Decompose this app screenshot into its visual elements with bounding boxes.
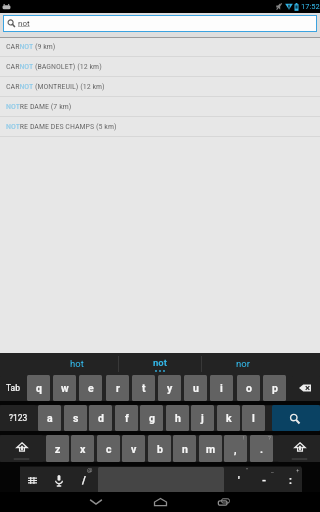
button[interactable]: not <box>119 353 201 375</box>
staticText: + <box>296 467 300 473</box>
button[interactable]: nor <box>202 353 284 375</box>
button[interactable]: d <box>89 405 112 431</box>
staticText: not <box>153 357 167 368</box>
button[interactable]: CARNOT (9 km) <box>0 37 320 57</box>
button[interactable]: z <box>46 435 69 462</box>
staticText: / <box>82 474 86 486</box>
button[interactable]: NOTRE DAME DES CHAMPS (5 km) <box>0 117 320 137</box>
staticText: f <box>125 412 129 424</box>
staticText: d <box>98 412 104 424</box>
button[interactable]: o <box>237 375 260 401</box>
button[interactable]: r <box>106 375 129 401</box>
staticText: : <box>289 474 292 486</box>
staticText: ' <box>238 474 240 486</box>
button[interactable]: w <box>53 375 76 401</box>
button[interactable]: t <box>132 375 155 401</box>
staticText: a <box>47 412 53 424</box>
staticText: g <box>149 412 155 424</box>
button[interactable]: k <box>217 405 240 431</box>
staticText: CARNOT (MONTREUIL) (12 km) <box>6 82 105 91</box>
staticText: t <box>142 382 146 394</box>
staticText: e <box>88 382 94 394</box>
staticText: s <box>73 412 79 424</box>
button[interactable] <box>47 467 71 493</box>
button[interactable]: h <box>166 405 189 431</box>
staticText: m <box>206 443 216 455</box>
button[interactable]: f <box>115 405 138 431</box>
button[interactable]: NOTRE DAME (7 km) <box>0 97 320 117</box>
button[interactable] <box>278 435 320 462</box>
staticText: - <box>262 474 267 486</box>
staticText: r <box>116 382 120 394</box>
button[interactable]: Back <box>84 492 108 512</box>
button[interactable] <box>272 405 320 431</box>
staticText: NOTRE DAME (7 km) <box>6 102 72 111</box>
staticText: CARNOT (9 km) <box>6 42 56 51</box>
staticText: i <box>220 382 223 394</box>
button[interactable]: hot <box>36 353 118 375</box>
button[interactable]: j <box>191 405 214 431</box>
button[interactable]: p <box>263 375 286 401</box>
staticText: . <box>260 443 264 455</box>
staticText: CARNOT (BAGNOLET) (12 km) <box>6 62 102 71</box>
button[interactable]: v <box>122 435 145 462</box>
staticText: b <box>157 443 163 455</box>
staticText: p <box>272 382 278 394</box>
button[interactable]: - <box>253 467 276 493</box>
button[interactable]: y <box>158 375 181 401</box>
button[interactable]: CARNOT (BAGNOLET) (12 km) <box>0 57 320 77</box>
staticText: @ <box>87 467 93 473</box>
staticText: not <box>18 19 30 28</box>
button[interactable] <box>98 467 224 493</box>
button[interactable]: Recents <box>212 492 236 512</box>
button[interactable]: ' <box>227 467 250 493</box>
staticText: o <box>246 382 252 394</box>
staticText: k <box>226 412 232 424</box>
staticText: " <box>246 467 248 473</box>
staticText: 17:52 <box>301 2 320 11</box>
button[interactable]: not <box>3 15 317 32</box>
button[interactable]: q <box>27 375 50 401</box>
button[interactable]: e <box>79 375 102 401</box>
staticText: Tab <box>6 383 20 393</box>
staticText: y <box>167 382 173 394</box>
staticText: ?123 <box>9 413 28 423</box>
staticText: n <box>182 443 188 455</box>
staticText: w <box>61 382 69 394</box>
button[interactable]: b <box>148 435 171 462</box>
staticText: _ <box>271 467 274 473</box>
staticText: hot <box>70 358 84 369</box>
button[interactable]: i <box>210 375 233 401</box>
staticText: j <box>201 412 204 424</box>
button[interactable] <box>20 467 44 493</box>
button[interactable]: : <box>279 467 302 493</box>
button[interactable]: n <box>173 435 196 462</box>
button[interactable]: / <box>72 467 95 493</box>
staticText: NOTRE DAME DES CHAMPS (5 km) <box>6 122 117 131</box>
staticText: v <box>131 443 137 455</box>
staticText: , <box>234 443 237 455</box>
button[interactable]: x <box>71 435 94 462</box>
button[interactable]: ?123 <box>0 405 36 431</box>
staticText: nor <box>236 358 250 369</box>
button[interactable]: Home <box>148 492 172 512</box>
button[interactable]: l <box>242 405 265 431</box>
staticText: h <box>175 412 181 424</box>
staticText: x <box>80 443 86 455</box>
button[interactable]: CARNOT (MONTREUIL) (12 km) <box>0 77 320 97</box>
staticText: z <box>55 443 61 455</box>
button[interactable]: Tab <box>0 375 25 401</box>
button[interactable]: , <box>224 435 247 462</box>
button[interactable]: u <box>184 375 207 401</box>
staticText: u <box>193 382 199 394</box>
button[interactable]: g <box>140 405 163 431</box>
button[interactable]: c <box>97 435 120 462</box>
staticText: ? <box>268 435 271 441</box>
button[interactable] <box>292 375 320 401</box>
button[interactable]: . <box>250 435 273 462</box>
button[interactable]: a <box>38 405 61 431</box>
button[interactable] <box>0 435 43 462</box>
button[interactable]: m <box>199 435 222 462</box>
button[interactable]: s <box>64 405 87 431</box>
staticText: ! <box>243 435 245 441</box>
